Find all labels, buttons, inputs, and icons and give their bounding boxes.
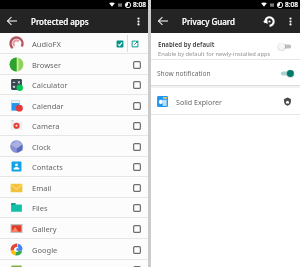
staticText: Contacts xyxy=(32,162,63,172)
staticText: Protected apps xyxy=(31,16,89,27)
button[interactable] xyxy=(128,115,145,136)
button[interactable]: More options xyxy=(285,16,296,27)
button[interactable]: Calculator xyxy=(0,74,148,95)
button[interactable] xyxy=(128,177,145,198)
staticText: Gallery xyxy=(32,224,57,234)
button[interactable]: Back xyxy=(157,15,169,27)
button[interactable] xyxy=(128,95,145,116)
button[interactable]: Show notification xyxy=(151,60,300,86)
staticText: Google xyxy=(32,245,58,255)
other: Privacy guard status xyxy=(283,97,292,106)
staticText: Enable by default for newly-installed ap… xyxy=(158,50,271,58)
button[interactable]: Solid Explorer xyxy=(151,88,300,115)
button[interactable] xyxy=(128,136,145,157)
button[interactable]: Enabled by default xyxy=(151,33,300,60)
staticText: Calendar xyxy=(32,101,64,111)
button[interactable]: Calendar xyxy=(0,95,148,116)
button[interactable]: Camera xyxy=(0,115,148,136)
staticText: Clock xyxy=(32,142,51,152)
button[interactable]: Messaging xyxy=(0,259,148,267)
staticText: Solid Explorer xyxy=(176,97,222,107)
button[interactable]: AudioFX xyxy=(0,33,148,54)
staticText: Show notification xyxy=(157,69,211,78)
button[interactable]: Email xyxy=(0,177,148,198)
button[interactable]: Clock xyxy=(0,136,148,157)
button[interactable] xyxy=(109,33,130,54)
staticText: Browser xyxy=(32,60,62,70)
button[interactable]: More options xyxy=(133,16,144,27)
staticText: Files xyxy=(32,203,48,213)
staticText: AudioFX xyxy=(32,39,61,49)
staticText: Calculator xyxy=(32,80,68,90)
button[interactable]: Back xyxy=(6,15,18,27)
button[interactable] xyxy=(128,218,145,239)
button[interactable] xyxy=(128,239,145,260)
staticText: 8:08 xyxy=(133,0,147,9)
staticText: Email xyxy=(32,183,52,193)
staticText: Enabled by default xyxy=(158,40,215,48)
button[interactable]: Files xyxy=(0,197,148,218)
button[interactable] xyxy=(128,74,145,95)
button[interactable] xyxy=(128,156,145,177)
button[interactable] xyxy=(128,54,145,75)
button[interactable]: Gallery xyxy=(0,218,148,239)
button[interactable]: History xyxy=(263,15,276,28)
staticText: 8:08 xyxy=(285,0,299,9)
button[interactable] xyxy=(128,259,145,267)
button[interactable]: Open app settings xyxy=(128,33,141,54)
staticText: Privacy Guard xyxy=(182,16,236,27)
button[interactable]: Google xyxy=(0,239,148,260)
button[interactable]: Browser xyxy=(0,54,148,75)
button[interactable]: Contacts xyxy=(0,156,148,177)
staticText: Camera xyxy=(32,121,60,131)
button[interactable] xyxy=(128,197,145,218)
